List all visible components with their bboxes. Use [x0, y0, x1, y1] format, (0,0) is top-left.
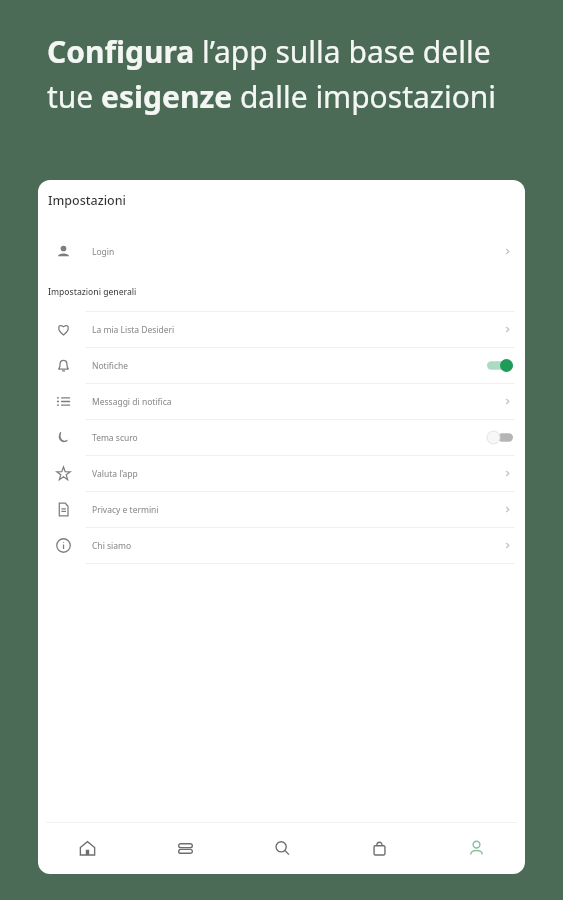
staticText: La mia Lista Desideri [92, 324, 502, 336]
staticText: Valuta l’app [92, 468, 502, 480]
button[interactable]: Notifiche [38, 348, 525, 383]
staticText: Impostazioni generali [48, 286, 137, 298]
staticText: Privacy e termini [92, 504, 502, 516]
button[interactable]: Messaggi di notifica [38, 384, 525, 419]
button[interactable]: Profile [428, 822, 525, 874]
button[interactable]: Home [38, 822, 136, 874]
button[interactable]: Chi siamo [38, 528, 525, 563]
button[interactable]: Categories [136, 822, 234, 874]
button[interactable]: Tema scuro [38, 420, 525, 455]
button[interactable]: Search [234, 822, 331, 874]
staticText: Messaggi di notifica [92, 396, 502, 408]
staticText: Login [92, 246, 502, 258]
button[interactable]: La mia Lista Desideri [38, 312, 525, 347]
staticText: Chi siamo [92, 540, 502, 552]
staticText: Notifiche [92, 360, 487, 372]
staticText: Impostazioni [48, 192, 126, 209]
button[interactable]: Valuta l’app [38, 456, 525, 491]
button[interactable]: Cart [331, 822, 428, 874]
staticText: Tema scuro [92, 432, 487, 444]
button[interactable]: Login [38, 234, 525, 269]
staticText: Configura l’app sulla base delle tue esi… [47, 31, 497, 117]
button[interactable]: Privacy e termini [38, 492, 525, 527]
